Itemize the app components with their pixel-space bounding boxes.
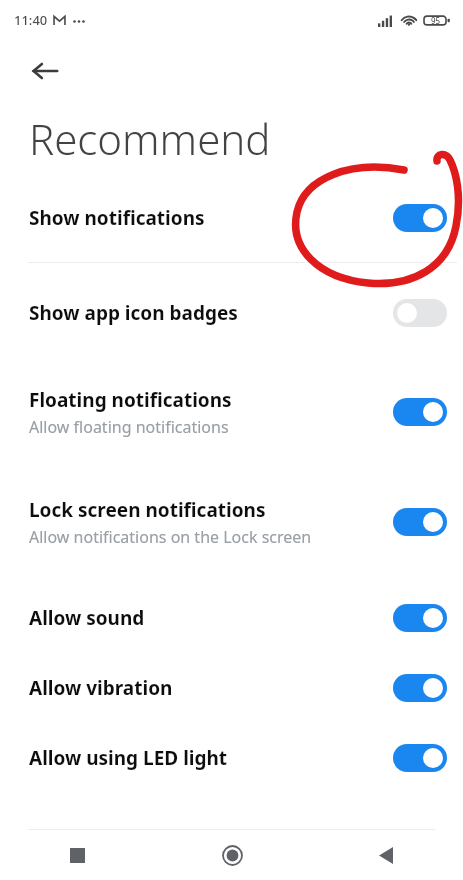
button[interactable]: Recents — [0, 830, 155, 880]
button[interactable]: Allow using LED light — [0, 723, 463, 793]
button[interactable]: On — [393, 604, 447, 632]
button[interactable]: Home — [155, 830, 309, 880]
button[interactable]: Allow vibration — [0, 653, 463, 723]
button[interactable]: On — [393, 674, 447, 702]
button[interactable]: Off — [393, 299, 447, 327]
staticText: Allow using LED light — [29, 745, 228, 771]
button[interactable]: Show app icon badges — [0, 263, 463, 363]
button[interactable]: On — [393, 204, 447, 232]
button[interactable]: On — [393, 744, 447, 772]
staticText: Allow floating notifications — [29, 416, 229, 438]
staticText: Show app icon badges — [29, 300, 238, 326]
button[interactable]: On — [393, 508, 447, 536]
staticText: 95 — [431, 15, 441, 26]
staticText: Recommend — [29, 110, 271, 167]
staticText: Floating notifications — [29, 387, 232, 413]
button[interactable]: Back — [22, 48, 68, 94]
button[interactable]: Lock screen notifications — [0, 461, 463, 583]
staticText: Allow sound — [29, 605, 145, 631]
staticText: 11:40 — [14, 11, 48, 29]
button[interactable]: On — [393, 398, 447, 426]
button[interactable]: Show notifications — [0, 174, 463, 262]
button[interactable]: Back — [309, 830, 463, 880]
staticText: Allow notifications on the Lock screen — [29, 526, 312, 548]
staticText: Lock screen notifications — [29, 497, 266, 523]
button[interactable]: Allow sound — [0, 583, 463, 653]
staticText: Allow vibration — [29, 675, 173, 701]
button[interactable]: Floating notifications — [0, 363, 463, 461]
staticText: Show notifications — [29, 205, 205, 231]
